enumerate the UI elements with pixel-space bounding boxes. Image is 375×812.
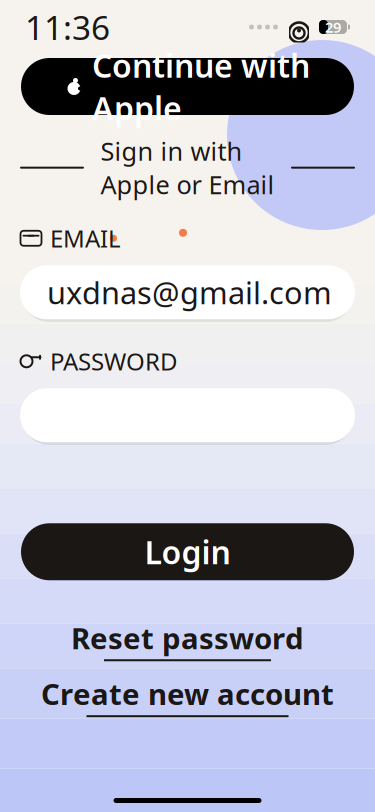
staticText: Reset password <box>71 618 304 657</box>
staticText: Continue with Apple <box>92 44 310 129</box>
button[interactable] <box>20 385 355 445</box>
staticText: 11:36 <box>25 5 110 49</box>
button[interactable]: uxdnas@gmail.com <box>20 262 355 322</box>
button[interactable]: Login <box>0 523 375 580</box>
staticText: Sign in with Apple or Email <box>100 134 274 201</box>
staticText: Create new account <box>41 674 334 713</box>
staticText: uxdnas@gmail.com <box>47 272 332 313</box>
staticText: 29 <box>325 17 341 37</box>
button[interactable]: Reset password <box>71 618 304 661</box>
staticText: Login <box>144 530 230 573</box>
button[interactable]: Create new account <box>41 674 334 717</box>
button[interactable]: Continue with Apple <box>0 58 375 115</box>
staticText: EMAIL <box>50 222 121 254</box>
staticText: PASSWORD <box>50 345 178 377</box>
